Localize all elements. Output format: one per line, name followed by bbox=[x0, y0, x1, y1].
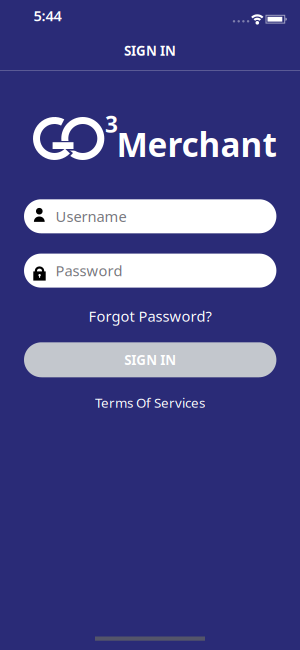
staticText: Password bbox=[55, 261, 122, 280]
staticText: Terms Of Services bbox=[95, 394, 205, 411]
staticText: Merchant bbox=[116, 122, 276, 166]
button[interactable]: Password bbox=[24, 254, 276, 288]
staticText: 3 bbox=[105, 109, 118, 139]
button[interactable]: Username bbox=[24, 199, 276, 233]
staticText: 5:44 bbox=[33, 6, 61, 25]
staticText: Forgot Password? bbox=[88, 306, 211, 326]
button[interactable]: Terms Of Services bbox=[95, 394, 205, 411]
staticText: SIGN IN bbox=[124, 351, 176, 369]
staticText: Username bbox=[55, 207, 126, 226]
button[interactable]: Forgot Password? bbox=[88, 306, 211, 326]
staticText: SIGN IN bbox=[124, 42, 176, 59]
button[interactable]: SIGN IN bbox=[24, 342, 276, 377]
